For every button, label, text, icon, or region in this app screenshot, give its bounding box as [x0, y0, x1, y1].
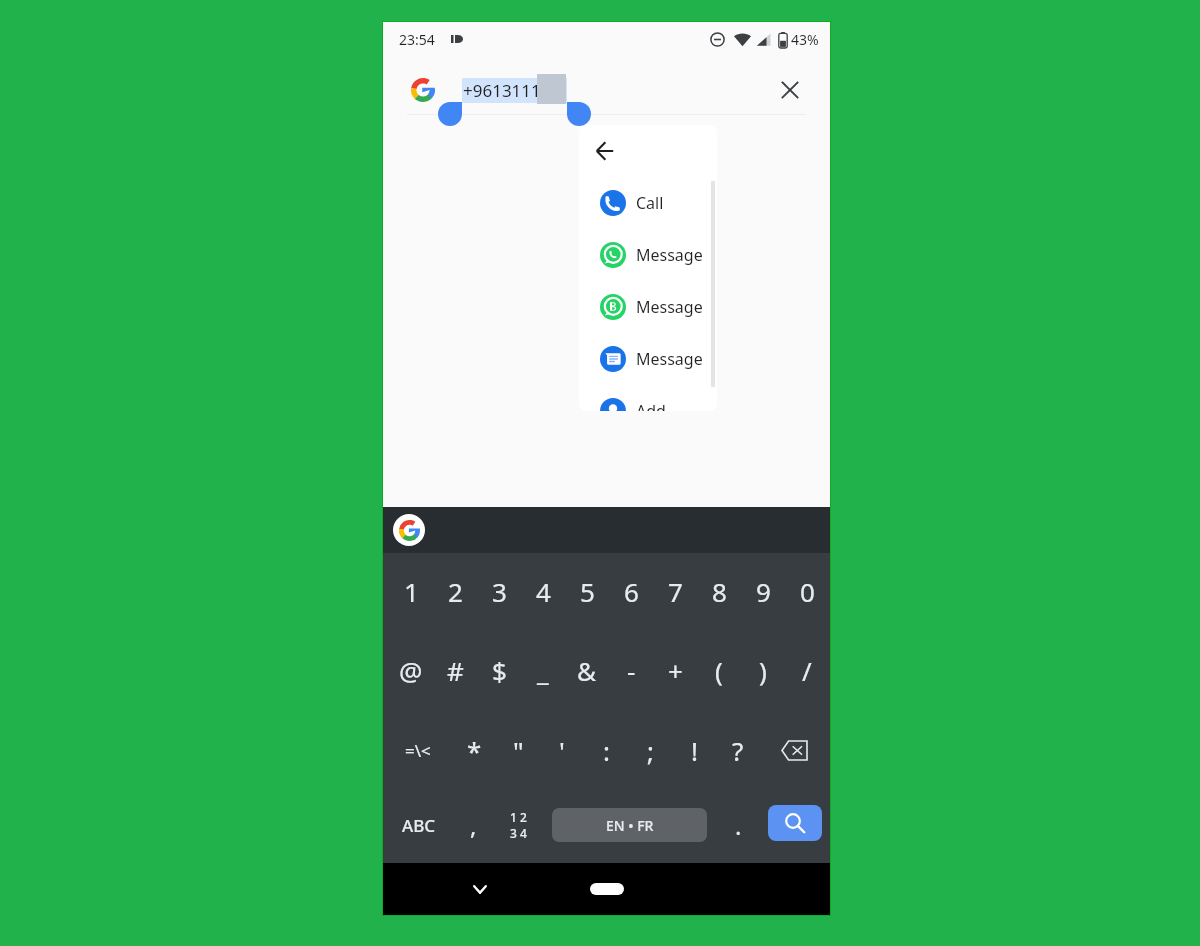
button[interactable]: ( [697, 646, 741, 694]
button[interactable]: ABC [394, 801, 444, 849]
button[interactable]: . [716, 801, 760, 849]
button[interactable]: Home [590, 883, 624, 895]
staticText: 6 [624, 574, 639, 609]
button[interactable]: Hide keyboard [464, 873, 496, 905]
button[interactable]: # [433, 646, 477, 694]
button[interactable]: Message [579, 235, 717, 275]
staticText: ABC [402, 814, 436, 837]
staticText: 1 2 [510, 809, 527, 825]
button[interactable]: 7 [653, 567, 697, 615]
staticText: . [735, 809, 742, 842]
staticText: " [513, 733, 524, 768]
staticText: 0 [800, 574, 815, 609]
staticText: Add [636, 400, 666, 411]
staticText: +9613111 [463, 79, 541, 102]
button[interactable]: 4 [521, 567, 565, 615]
staticText: 3 4 [510, 825, 527, 841]
staticText: ? [732, 733, 744, 768]
button[interactable]: Message [579, 287, 717, 327]
button[interactable]: Clear [771, 71, 809, 109]
staticText: 5 [580, 574, 595, 609]
button[interactable]: 5 [565, 567, 609, 615]
button[interactable]: , [451, 801, 495, 849]
staticText: : [603, 733, 610, 768]
staticText: + [668, 653, 683, 688]
staticText: - [627, 653, 636, 688]
staticText: _ [537, 653, 549, 688]
staticText: 3 [492, 574, 507, 609]
staticText: Message [636, 244, 703, 266]
button[interactable]: 3 [477, 567, 521, 615]
staticText: # [447, 653, 464, 688]
button[interactable]: & [565, 646, 609, 694]
button[interactable]: Message [579, 339, 717, 379]
staticText: 23:54 [399, 30, 435, 49]
staticText: * [467, 733, 482, 768]
staticText: ! [691, 733, 698, 768]
button[interactable]: ! [672, 726, 716, 774]
staticText: Message [636, 296, 703, 318]
button[interactable]: 6 [609, 567, 653, 615]
staticText: EN • FR [606, 816, 654, 835]
staticText: 2 [448, 574, 463, 609]
button[interactable]: =\< [396, 726, 440, 774]
staticText: 9 [756, 574, 771, 609]
staticText: & [577, 653, 597, 688]
button[interactable]: / [785, 646, 829, 694]
button[interactable]: - [609, 646, 653, 694]
button[interactable]: _ [521, 646, 565, 694]
button[interactable]: Back [586, 132, 624, 170]
button[interactable]: ? [716, 726, 760, 774]
button[interactable]: 2 [433, 567, 477, 615]
button[interactable]: 1 [389, 567, 433, 615]
staticText: 43% [791, 30, 819, 49]
staticText: ) [759, 653, 767, 688]
staticText: Message [636, 348, 703, 370]
button[interactable]: 8 [697, 567, 741, 615]
button[interactable]: Search [768, 805, 822, 841]
staticText: 4 [536, 574, 551, 609]
button[interactable]: * [452, 726, 496, 774]
staticText: Call [636, 192, 664, 214]
button[interactable]: Google [393, 514, 425, 546]
button[interactable]: ; [628, 726, 672, 774]
staticText: ; [647, 733, 654, 768]
staticText: @ [399, 653, 423, 688]
staticText: 7 [668, 574, 683, 609]
staticText: ( [715, 653, 723, 688]
button[interactable]: $ [477, 646, 521, 694]
button[interactable]: Backspace [772, 726, 816, 774]
button[interactable]: 9 [741, 567, 785, 615]
button[interactable]: 1 2 [496, 801, 540, 849]
staticText: 1 [404, 574, 419, 609]
button[interactable]: : [584, 726, 628, 774]
button[interactable]: 0 [785, 567, 829, 615]
button[interactable]: Add [579, 391, 717, 411]
staticText: =\< [405, 739, 431, 762]
staticText: , [470, 809, 477, 842]
staticText: ' [559, 733, 565, 768]
button[interactable]: + [653, 646, 697, 694]
staticText: 8 [712, 574, 727, 609]
button[interactable]: Call [579, 183, 717, 223]
button[interactable]: EN • FR [552, 808, 707, 842]
button[interactable]: ) [741, 646, 785, 694]
staticText: / [802, 653, 812, 688]
button[interactable]: ' [540, 726, 584, 774]
button[interactable]: @ [389, 646, 433, 694]
button[interactable]: " [496, 726, 540, 774]
staticText: $ [492, 653, 507, 688]
